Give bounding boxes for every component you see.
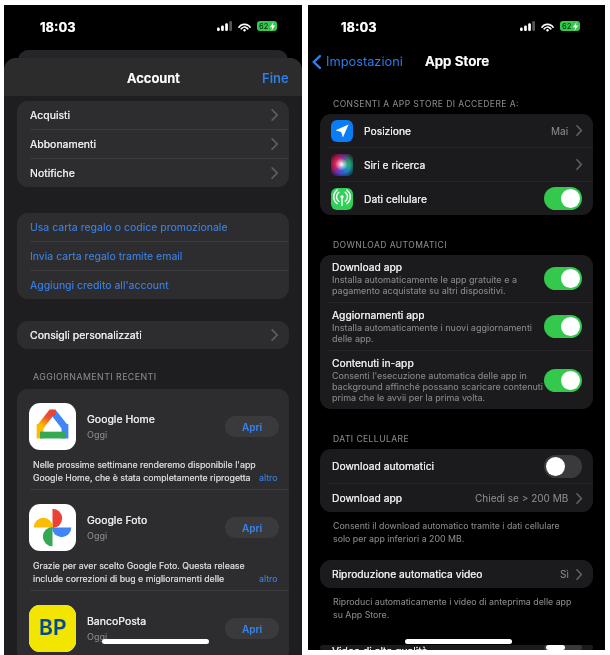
button[interactable]: Apri	[225, 416, 279, 437]
staticText: Apri	[242, 522, 263, 534]
staticText: pagamento acquistate su altri dispositiv…	[332, 285, 506, 296]
button[interactable]: Google Home	[17, 389, 289, 489]
button[interactable]: Off	[544, 645, 582, 650]
staticText: Riproduci automaticamente i video di ant…	[333, 596, 572, 607]
staticText: Usa carta regalo o codice promozionale	[30, 221, 228, 234]
staticText: Abbonamenti	[30, 138, 96, 151]
staticText: Grazie per aver scelto Google Foto. Ques…	[33, 560, 245, 571]
button[interactable]: On	[544, 315, 582, 338]
button[interactable]: BP	[17, 591, 289, 655]
staticText: Google Home, che è stata completamente r…	[33, 472, 251, 483]
button[interactable]: Impostazioni	[308, 50, 411, 73]
staticText: 62	[259, 22, 269, 31]
staticText: Google Home	[87, 413, 155, 426]
button[interactable]: Usa carta regalo o codice promozionale	[17, 213, 289, 241]
staticText: 62	[562, 22, 572, 31]
staticText: background affinché possano scaricare co…	[332, 381, 543, 392]
staticText: Consenti l'esecuzione automatica delle a…	[332, 370, 527, 381]
button[interactable]: Aggiungi credito all'account	[17, 271, 289, 299]
staticText: Acquisti	[30, 109, 70, 122]
staticText: Siri e ricerca	[364, 159, 426, 171]
button[interactable]: Acquisti	[17, 101, 289, 129]
staticText: Mai	[551, 125, 569, 137]
staticText: Chiedi se > 200 MB	[475, 492, 569, 504]
staticText: Aggiungi credito all'account	[30, 279, 169, 292]
staticText: delle app.	[332, 333, 374, 344]
staticText: Impostazioni	[326, 54, 403, 69]
button[interactable]: On	[544, 369, 582, 392]
button[interactable]: Off	[544, 455, 582, 478]
staticText: solo per app inferiori a 200 MB.	[333, 533, 465, 544]
staticText: 18:03	[341, 19, 377, 35]
staticText: Download app	[332, 261, 403, 273]
staticText: Oggi	[87, 429, 108, 440]
staticText: altro	[259, 573, 278, 584]
button[interactable]: On	[544, 267, 582, 290]
button[interactable]: Notifiche	[17, 159, 289, 187]
button[interactable]: Download app	[320, 255, 593, 302]
staticText: Download automatici	[332, 460, 435, 472]
button[interactable]: Consigli personalizzati	[17, 321, 289, 349]
staticText: su App Store.	[333, 609, 390, 620]
button[interactable]: Apri	[225, 517, 279, 538]
button[interactable]: Siri e ricerca	[320, 148, 593, 181]
staticText: DOWNLOAD AUTOMATICI	[333, 240, 447, 250]
staticText: Riproduzione automatica video	[332, 568, 483, 580]
button[interactable]: Abbonamenti	[17, 130, 289, 158]
staticText: Consigli personalizzati	[30, 329, 142, 342]
staticText: altro	[259, 472, 278, 483]
button[interactable]: Riproduzione automatica video	[320, 560, 593, 588]
button[interactable]: Posizione	[320, 114, 593, 147]
staticText: AGGIORNAMENTI RECENTI	[33, 371, 157, 382]
staticText: Installa automaticamente le app gratuite…	[332, 274, 517, 285]
staticText: Video di alta qualità	[332, 645, 428, 650]
staticText: 18:03	[40, 19, 76, 35]
button[interactable]: Video di alta qualità	[320, 645, 593, 650]
staticText: Contenuti in-app	[332, 357, 414, 369]
staticText: BancoPosta	[87, 615, 147, 628]
staticText: Invia carta regalo tramite email	[30, 250, 183, 263]
staticText: include correzioni di bug e migliorament…	[33, 573, 225, 584]
staticText: Google Foto	[87, 514, 148, 527]
button[interactable]: On	[544, 187, 582, 210]
button[interactable]: Google Foto	[17, 490, 289, 590]
button[interactable]: Dati cellulare	[320, 182, 593, 215]
staticText: Nelle prossime settimane renderemo dispo…	[33, 459, 256, 470]
staticText: Consenti il download automatico tramite …	[333, 520, 560, 531]
staticText: Sì	[560, 568, 569, 580]
staticText: CONSENTI A APP STORE DI ACCEDERE A:	[333, 99, 519, 109]
staticText: Apri	[242, 623, 263, 635]
staticText: Installa automaticamente i nuovi aggiorn…	[332, 322, 533, 333]
button[interactable]: Download app	[320, 484, 593, 512]
staticText: Fine	[262, 70, 289, 86]
button[interactable]: Fine	[249, 61, 302, 95]
staticText: BP	[39, 615, 67, 640]
button[interactable]: Aggiornamenti app	[320, 303, 593, 350]
staticText: Dati cellulare	[364, 193, 427, 205]
staticText: DATI CELLULARE	[333, 434, 409, 444]
staticText: App Store	[425, 53, 490, 69]
staticText: Posizione	[364, 125, 412, 137]
button[interactable]: Apri	[225, 618, 279, 639]
staticText: Aggiornamenti app	[332, 309, 425, 321]
staticText: Oggi	[87, 631, 108, 642]
staticText: Oggi	[87, 530, 108, 541]
staticText: Notifiche	[30, 167, 75, 180]
staticText: Download app	[332, 492, 403, 504]
staticText: Account	[127, 70, 180, 86]
staticText: Apri	[242, 421, 263, 433]
button[interactable]: Invia carta regalo tramite email	[17, 242, 289, 270]
button[interactable]: Contenuti in-app	[320, 351, 593, 409]
staticText: prima che le avvii per la prima volta.	[332, 392, 486, 403]
button[interactable]: Download automatici	[320, 449, 593, 483]
